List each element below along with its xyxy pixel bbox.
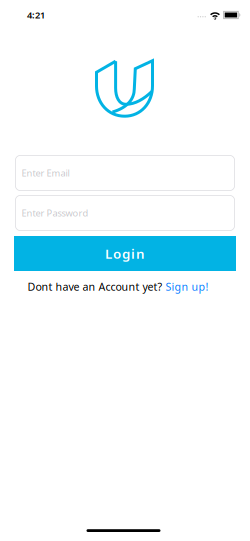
staticText: Sign up! (165, 279, 208, 294)
staticText: Enter Email (21, 167, 69, 179)
button[interactable]: Sign up! (165, 279, 208, 294)
button[interactable]: Login (14, 236, 236, 271)
staticText: Login (105, 245, 145, 262)
button[interactable]: Enter Password (15, 195, 235, 231)
button[interactable]: Enter Email (15, 155, 235, 191)
staticText: Dont have an Account yet? (27, 279, 162, 294)
staticText: 4:21 (27, 9, 45, 21)
staticText: Enter Password (21, 207, 88, 219)
